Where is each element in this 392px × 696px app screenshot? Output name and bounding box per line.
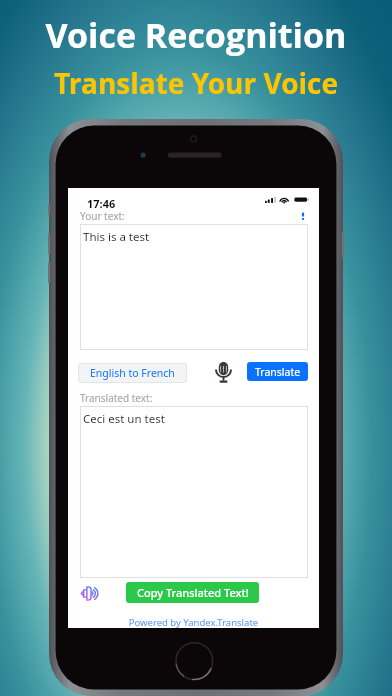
button[interactable]: This is a test	[80, 224, 308, 350]
button[interactable]: Translate	[247, 362, 308, 381]
staticText: Voice Recognition	[0, 12, 392, 58]
staticText: This is a test	[83, 229, 150, 245]
button[interactable]: English to French	[78, 363, 187, 383]
staticText: Copy Translated Text!	[137, 585, 249, 600]
button[interactable]: Copy Translated Text!	[126, 582, 259, 603]
staticText: English to French	[90, 366, 175, 380]
button[interactable]: Speak	[215, 362, 232, 383]
button[interactable]: Ceci est un test	[80, 406, 308, 578]
staticText: Your text:	[80, 209, 125, 223]
button[interactable]: Powered by Yandex.Translate	[68, 616, 319, 629]
staticText: Ceci est un test	[83, 411, 165, 427]
staticText: 17:46	[87, 196, 116, 211]
button[interactable]: Play audio	[81, 586, 101, 601]
staticText: Translate Your Voice	[0, 64, 392, 102]
staticText: Translate	[255, 365, 301, 379]
button[interactable]: Information	[297, 208, 309, 220]
staticText: Translated text:	[80, 391, 153, 405]
